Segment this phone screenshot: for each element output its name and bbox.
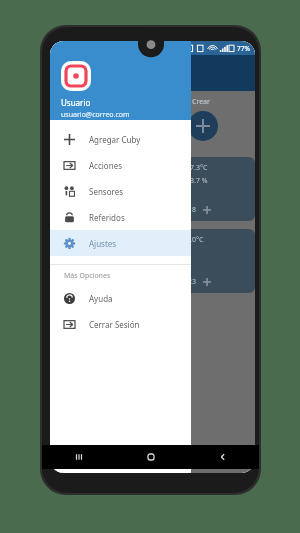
- staticText: 23.7 %: [186, 176, 208, 186]
- staticText: Agregar Cuby: [89, 134, 141, 145]
- button[interactable]: 0.0°C: [168, 229, 255, 293]
- button[interactable]: Acciones: [50, 152, 191, 178]
- button[interactable]: Recientes: [42, 445, 115, 469]
- staticText: Ayuda: [89, 293, 113, 304]
- button[interactable]: Sensores: [50, 178, 191, 204]
- staticText: Sensores: [89, 186, 124, 197]
- staticText: Crear: [192, 97, 210, 107]
- staticText: 18: [188, 205, 197, 215]
- button[interactable]: Ajustes: [50, 230, 191, 256]
- staticText: Más Opciones: [64, 271, 111, 281]
- staticText: Acciones: [89, 160, 122, 171]
- button[interactable]: 27.3°C: [168, 157, 255, 221]
- button[interactable]: Agregar Cuby: [50, 126, 191, 152]
- staticText: Referidos: [89, 212, 125, 223]
- staticText: 2:02: [55, 43, 69, 53]
- staticText: usuario@correo.com: [61, 110, 130, 120]
- staticText: 77%: [237, 44, 250, 53]
- staticText: Cerrar Sesión: [89, 319, 140, 330]
- staticText: 27.3°C: [186, 163, 208, 173]
- button[interactable]: Referidos: [50, 204, 191, 230]
- staticText: Usuario: [61, 97, 91, 108]
- staticText: Ajustes: [89, 238, 117, 249]
- button[interactable]: Ayuda: [50, 285, 191, 311]
- button[interactable]: Cerrar Sesión: [50, 311, 191, 337]
- staticText: 23: [188, 277, 197, 287]
- button[interactable]: Atrás: [187, 445, 259, 469]
- staticText: 0.0°C: [186, 235, 204, 245]
- button[interactable]: Agregar: [188, 111, 218, 141]
- button[interactable]: Inicio: [115, 445, 187, 469]
